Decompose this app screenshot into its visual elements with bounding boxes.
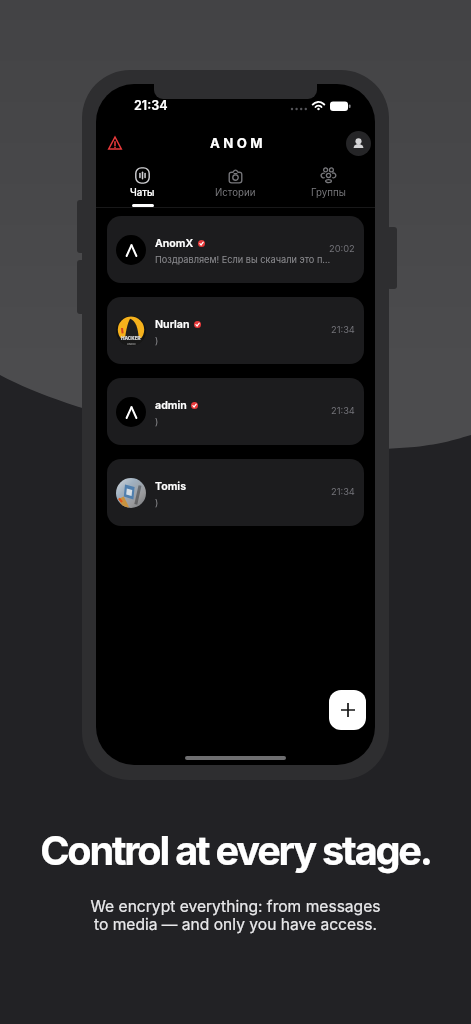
staticText: 21:34 (331, 405, 355, 416)
button[interactable]: admin (107, 378, 364, 445)
staticText: ) (155, 335, 159, 346)
button[interactable]: Истории (189, 162, 282, 208)
staticText: Поздравляем! Если вы скачали это п… (155, 254, 331, 265)
button[interactable]: Warning (101, 129, 129, 157)
button[interactable]: HACKER (107, 297, 364, 364)
staticText: Nurlan (155, 318, 190, 331)
button[interactable]: Profile (346, 131, 371, 156)
button[interactable]: AnomX (107, 216, 364, 283)
button[interactable]: New chat (329, 690, 366, 730)
staticText: ) (155, 497, 159, 508)
button[interactable]: Tomis (107, 459, 364, 526)
staticText: 21:34 (134, 98, 168, 113)
staticText: Истории (215, 187, 256, 199)
staticText: We encrypt everything: from messages to … (90, 897, 381, 934)
staticText: Группы (311, 187, 346, 199)
button[interactable]: Чаты (96, 162, 189, 208)
staticText: admin (155, 399, 187, 412)
staticText: AnomX (155, 237, 194, 250)
staticText: HACKER (121, 336, 141, 342)
button[interactable]: Группы (282, 162, 375, 208)
staticText: 21:34 (331, 324, 355, 335)
staticText: ) (155, 416, 159, 427)
staticText: 21:34 (331, 486, 355, 497)
staticText: 20:02 (329, 243, 355, 254)
staticText: Control at every stage. (40, 827, 431, 875)
staticText: ANOM (210, 135, 266, 151)
staticText: UNION (127, 342, 136, 345)
staticText: Tomis (155, 480, 187, 493)
staticText: Чаты (130, 187, 155, 199)
